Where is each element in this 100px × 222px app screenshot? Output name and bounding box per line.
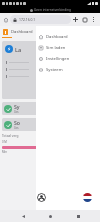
staticText: Dashboard bbox=[11, 29, 33, 35]
staticText: Geen internetverbinding bbox=[34, 8, 71, 12]
staticText: 0 M bbox=[2, 140, 7, 144]
button[interactable]: 172.16.0.1 bbox=[10, 15, 71, 24]
staticText: Ges bbox=[14, 126, 19, 130]
button[interactable]: Dashboard bbox=[36, 31, 100, 42]
staticText: Systeem bbox=[46, 67, 63, 73]
staticText: Ges bbox=[14, 110, 19, 114]
staticText: Dashboard bbox=[46, 34, 68, 40]
button[interactable]: Sy bbox=[2, 102, 44, 115]
staticText: Instellingen bbox=[46, 56, 70, 62]
button[interactable]: La bbox=[2, 41, 44, 99]
button[interactable]: Tabs bbox=[80, 15, 89, 24]
staticText: Sy bbox=[14, 103, 20, 110]
button[interactable]: Instellingen bbox=[36, 53, 100, 64]
button[interactable]: Sim laden bbox=[36, 42, 100, 53]
button[interactable]: Account bbox=[37, 193, 46, 202]
button[interactable]: More options bbox=[89, 15, 98, 24]
staticText: So bbox=[14, 119, 21, 126]
staticText: Totaal verg bbox=[2, 134, 19, 138]
button[interactable]: Recent apps bbox=[73, 211, 83, 221]
staticText: 172.16.0.1 bbox=[19, 17, 36, 22]
button[interactable]: So bbox=[2, 118, 44, 131]
staticText: La bbox=[15, 46, 22, 53]
staticText: Min bbox=[2, 150, 7, 154]
button[interactable]: Back bbox=[18, 211, 28, 221]
button[interactable]: Language Dutch bbox=[83, 193, 92, 202]
button[interactable]: Home bbox=[2, 16, 10, 24]
staticText: Sim laden bbox=[46, 45, 66, 51]
button[interactable]: Systeem bbox=[36, 64, 100, 75]
button[interactable]: New tab bbox=[71, 15, 80, 24]
button[interactable]: Home bbox=[45, 211, 55, 221]
